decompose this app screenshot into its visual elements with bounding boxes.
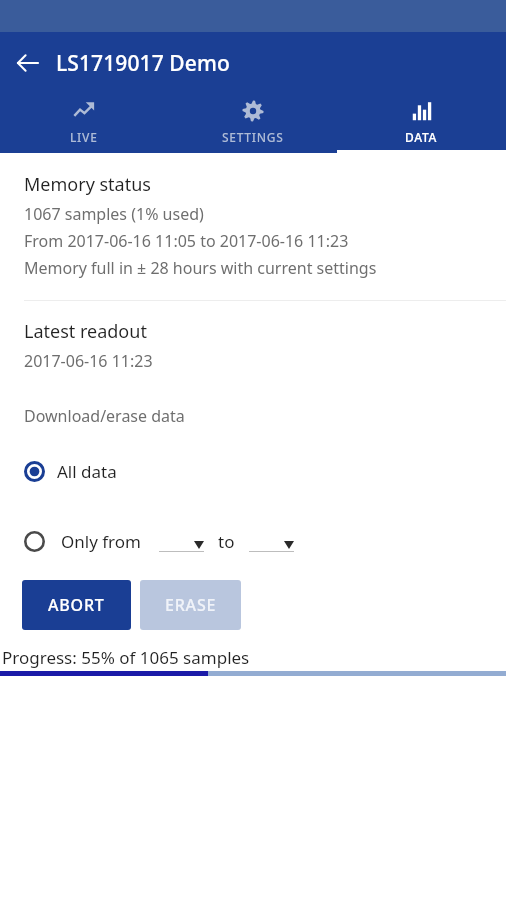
staticText: Progress: 55% of 1065 samples bbox=[2, 646, 250, 669]
staticText: LIVE bbox=[70, 129, 98, 145]
button[interactable]: Back bbox=[0, 35, 56, 91]
staticText: 2017-06-16 11:23 bbox=[24, 350, 153, 372]
staticText: From 2017-06-16 11:05 to 2017-06-16 11:2… bbox=[24, 230, 349, 252]
staticText: DATA bbox=[405, 129, 438, 145]
staticText: Memory full in ± 28 hours with current s… bbox=[24, 257, 377, 279]
staticText: Download/erase data bbox=[24, 405, 185, 427]
staticText: ABORT bbox=[48, 594, 105, 616]
staticText: Memory status bbox=[24, 172, 151, 197]
staticText: Only from bbox=[61, 530, 141, 553]
button[interactable]: LIVE bbox=[0, 94, 168, 150]
button[interactable]: DATA bbox=[337, 94, 506, 150]
staticText: ERASE bbox=[165, 594, 217, 616]
staticText: 1067 samples (1% used) bbox=[24, 203, 204, 225]
button[interactable]: Select date bbox=[159, 531, 204, 551]
staticText: to bbox=[218, 530, 235, 553]
staticText: Latest readout bbox=[24, 319, 147, 344]
button[interactable]: ABORT bbox=[22, 580, 131, 630]
staticText: SETTINGS bbox=[222, 129, 284, 145]
staticText: LS1719017 Demo bbox=[56, 49, 230, 78]
button[interactable]: Select date bbox=[249, 531, 294, 551]
staticText: All data bbox=[57, 460, 117, 483]
button[interactable]: ERASE bbox=[140, 580, 241, 630]
button[interactable]: Only from bbox=[24, 530, 141, 553]
button[interactable]: All data bbox=[0, 452, 506, 490]
button[interactable]: SETTINGS bbox=[168, 94, 337, 150]
